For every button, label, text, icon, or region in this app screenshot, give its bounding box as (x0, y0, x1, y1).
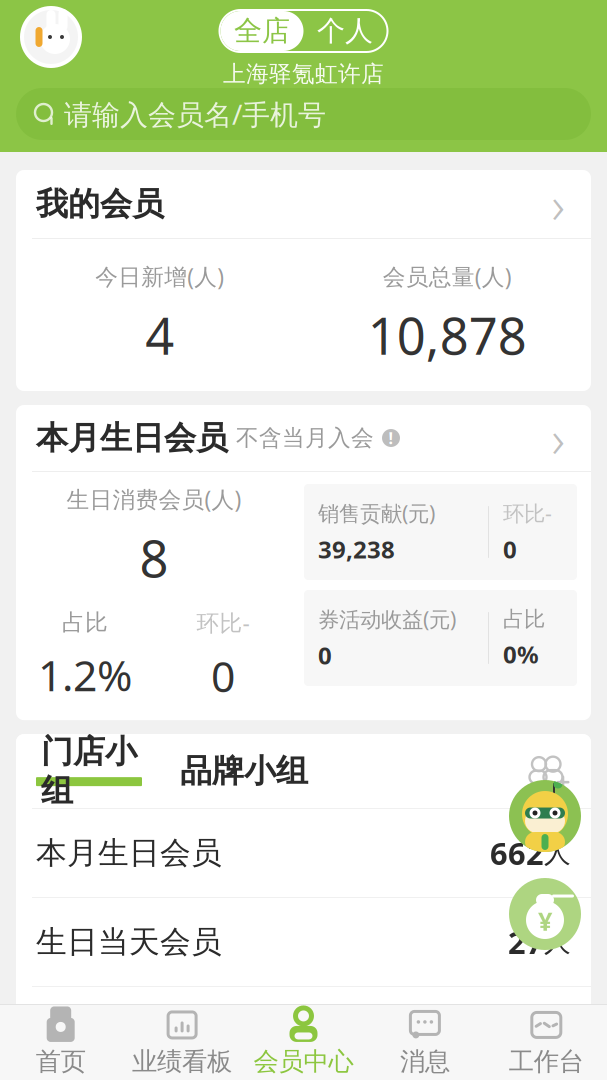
staticText: 券活动收益(元) (318, 605, 456, 633)
staticText: 4 (145, 301, 174, 369)
staticText: 环比- (503, 499, 552, 527)
staticText: 会员中心 (253, 1046, 353, 1077)
staticText: 今日新增(人) (95, 261, 224, 291)
staticText: 首页 (36, 1046, 86, 1077)
staticText: ¥ (538, 904, 552, 938)
button[interactable]: 生日当天会员 (16, 898, 591, 986)
staticText: 生日当天会员 (36, 923, 222, 961)
staticText: › (551, 404, 564, 472)
staticText: 本月生日会员 (36, 834, 222, 872)
button[interactable]: 本月生日会员 (16, 405, 591, 471)
staticText: 上海驿氪虹许店 (223, 60, 384, 88)
button[interactable]: 我的会员 (16, 170, 591, 238)
staticText: 27 (508, 922, 544, 962)
staticText: 占比 (503, 606, 545, 632)
button[interactable]: Add member (525, 751, 571, 791)
staticText: 消息 (400, 1046, 450, 1077)
button[interactable]: Assistant (509, 780, 581, 852)
button[interactable]: Profile (20, 6, 82, 68)
staticText: 我的会员 (36, 184, 164, 224)
staticText: 1.2% (38, 646, 132, 703)
staticText: 0 (318, 639, 332, 671)
button[interactable]: 本月生日会员 (16, 809, 591, 897)
staticText: 会员总量(人) (383, 261, 512, 291)
staticText: 品牌小组 (180, 751, 308, 791)
staticText: 环比- (196, 607, 249, 637)
staticText: 0 (211, 647, 235, 704)
staticText: 本月生日会员 (36, 418, 228, 458)
button[interactable]: 消息 (364, 1005, 486, 1079)
button[interactable]: 门店小组 (36, 754, 142, 788)
staticText: 39,238 (318, 533, 395, 565)
staticText: 662 (490, 833, 544, 873)
staticText: 10,878 (368, 301, 527, 369)
staticText: 全店 (234, 14, 290, 48)
staticText: 0 (503, 533, 517, 565)
staticText: 人 (544, 926, 571, 959)
button[interactable]: 请输入会员名/手机号 (16, 88, 591, 140)
staticText: 销售贡献(元) (318, 499, 435, 527)
staticText: › (551, 170, 564, 238)
staticText: 8 (139, 524, 168, 591)
staticText: 0% (503, 638, 539, 670)
button[interactable]: 全店 (220, 11, 303, 51)
staticText: 不含当月入会 (236, 424, 374, 452)
button[interactable]: 业绩看板 (121, 1005, 243, 1079)
staticText: 人 (544, 837, 571, 870)
button[interactable]: 个人 (303, 11, 386, 51)
staticText: 生日消费会员(人) (66, 484, 241, 514)
staticText: ! (388, 427, 393, 449)
button[interactable]: 会员中心 (243, 1005, 364, 1079)
button[interactable]: 工作台 (486, 1005, 607, 1079)
button[interactable]: 品牌小组 (180, 754, 308, 788)
button[interactable]: Rewards (509, 878, 581, 950)
staticText: 占比 (62, 608, 108, 636)
button[interactable]: 首页 (0, 1005, 121, 1079)
staticText: 请输入会员名/手机号 (64, 95, 326, 133)
staticText: 业绩看板 (132, 1046, 232, 1077)
staticText: 个人 (317, 14, 373, 48)
staticText: 工作台 (509, 1046, 584, 1077)
staticText: 门店小组 (41, 732, 137, 810)
